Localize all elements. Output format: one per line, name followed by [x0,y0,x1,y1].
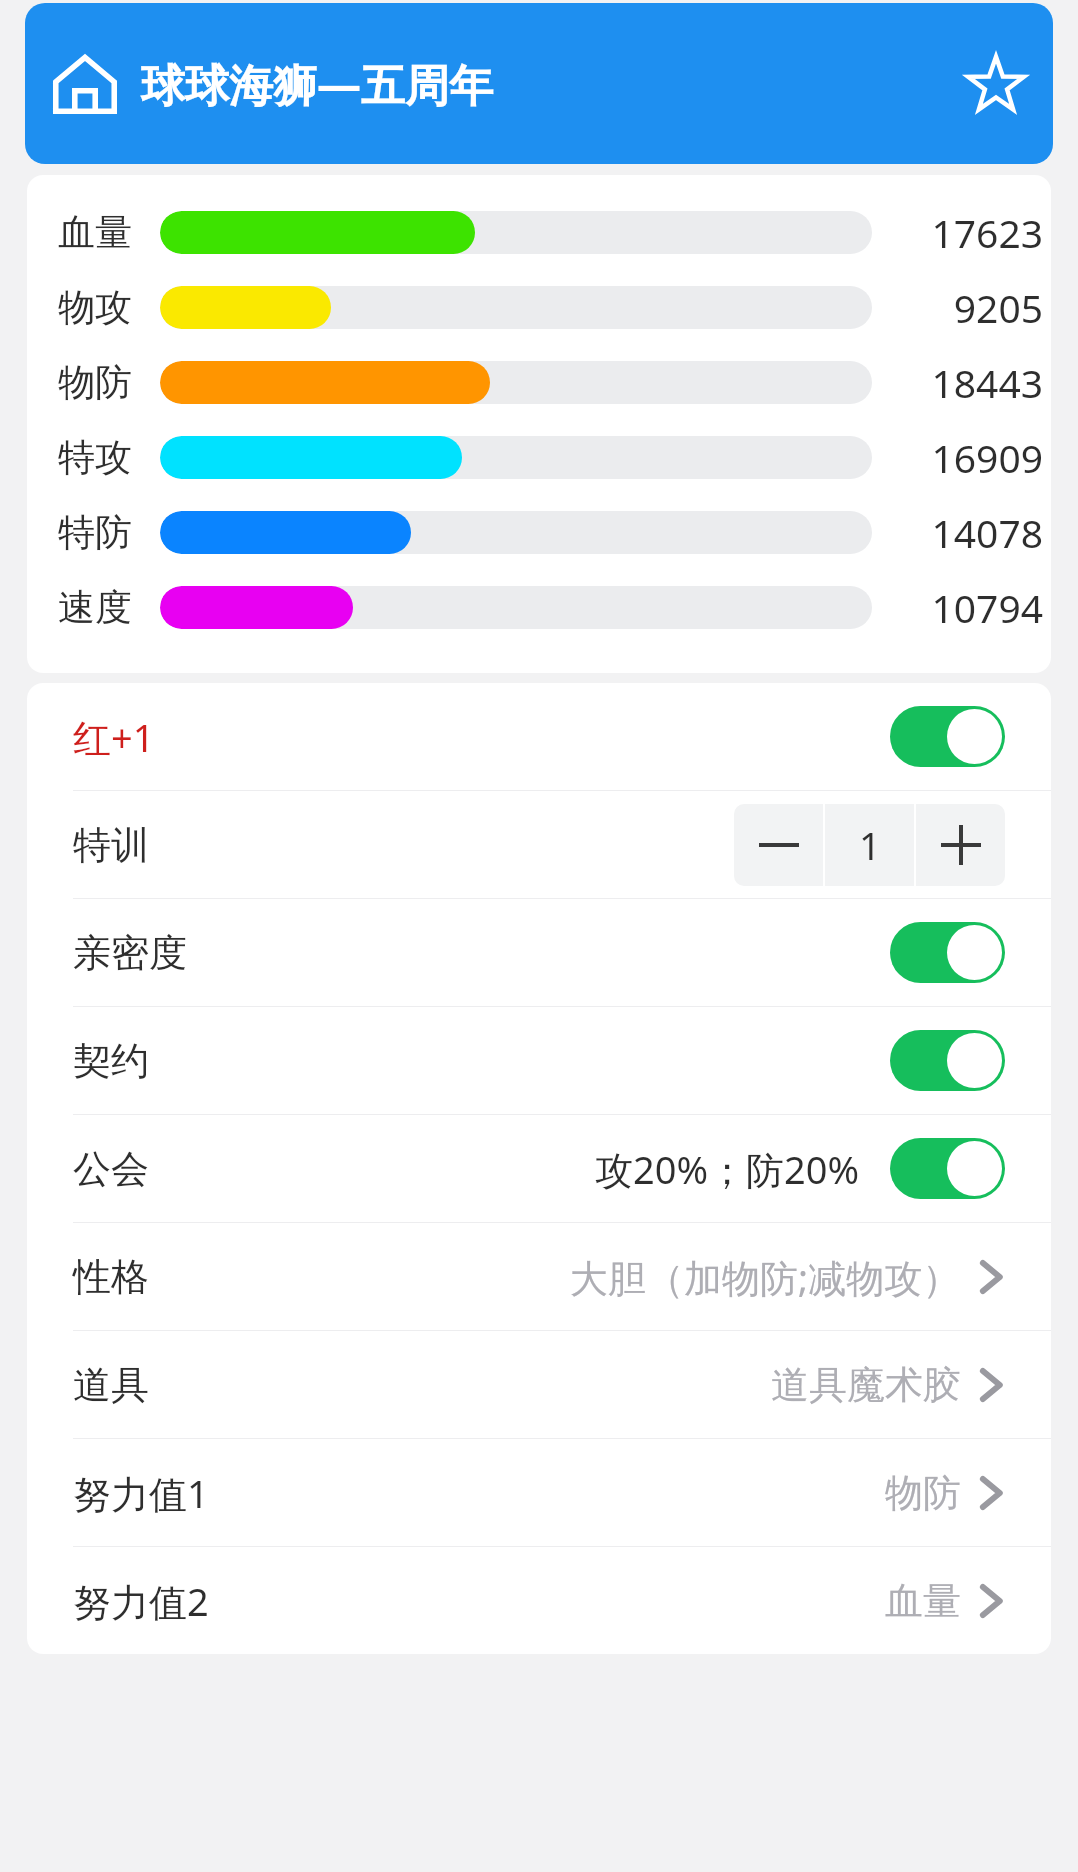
button[interactable]: 道具 [27,1331,1051,1438]
button[interactable]: 契约 [27,1007,1051,1114]
staticText: 16909 [898,431,1043,484]
staticText: 特防 [58,509,132,556]
staticText: 道具魔术胶 [771,1361,961,1409]
staticText: 速度 [58,584,132,631]
staticText: 道具 [73,1361,149,1409]
staticText: 努力值1 [73,1467,209,1519]
staticText: 9205 [898,281,1043,334]
staticText: 18443 [898,356,1043,409]
staticText: 10794 [898,581,1043,634]
button[interactable]: Toggle [890,1030,1005,1091]
staticText: 公会 [73,1145,149,1193]
staticText: 努力值2 [73,1575,209,1627]
other: Home [51,50,119,118]
staticText: 红+1 [73,711,155,763]
button[interactable]: Toggle [890,706,1005,767]
staticText: 14078 [898,506,1043,559]
staticText: 契约 [73,1037,149,1085]
button[interactable]: Toggle [890,922,1005,983]
staticText: 性格 [73,1253,149,1301]
staticText: 大胆（加物防;减物攻） [570,1251,961,1303]
button[interactable]: 红+1 [27,683,1051,790]
staticText: 17623 [898,206,1043,259]
staticText: 物防 [885,1469,961,1517]
button[interactable]: 性格 [27,1223,1051,1330]
button[interactable]: Home [25,3,1053,164]
staticText: 物攻 [58,284,132,331]
button[interactable]: 1 [825,804,914,886]
button[interactable]: 特训 [27,791,1051,898]
staticText: 特训 [73,821,149,869]
staticText: 血量 [885,1577,961,1625]
button[interactable]: Favorite [965,53,1027,115]
staticText: 物防 [58,359,132,406]
button[interactable]: 亲密度 [27,899,1051,1006]
button[interactable]: 公会 [27,1115,1051,1222]
staticText: 特攻 [58,434,132,481]
staticText: 1 [859,819,881,871]
button[interactable]: Increase [916,804,1005,886]
staticText: 亲密度 [73,929,187,977]
button[interactable]: Toggle [890,1138,1005,1199]
staticText: 攻20%；防20% [595,1143,860,1195]
staticText: 球球海狮—五周年 [141,54,493,114]
staticText: 血量 [58,209,132,256]
button[interactable]: Decrease [734,804,823,886]
button[interactable]: 努力值1 [27,1439,1051,1546]
button[interactable]: 努力值2 [27,1547,1051,1654]
